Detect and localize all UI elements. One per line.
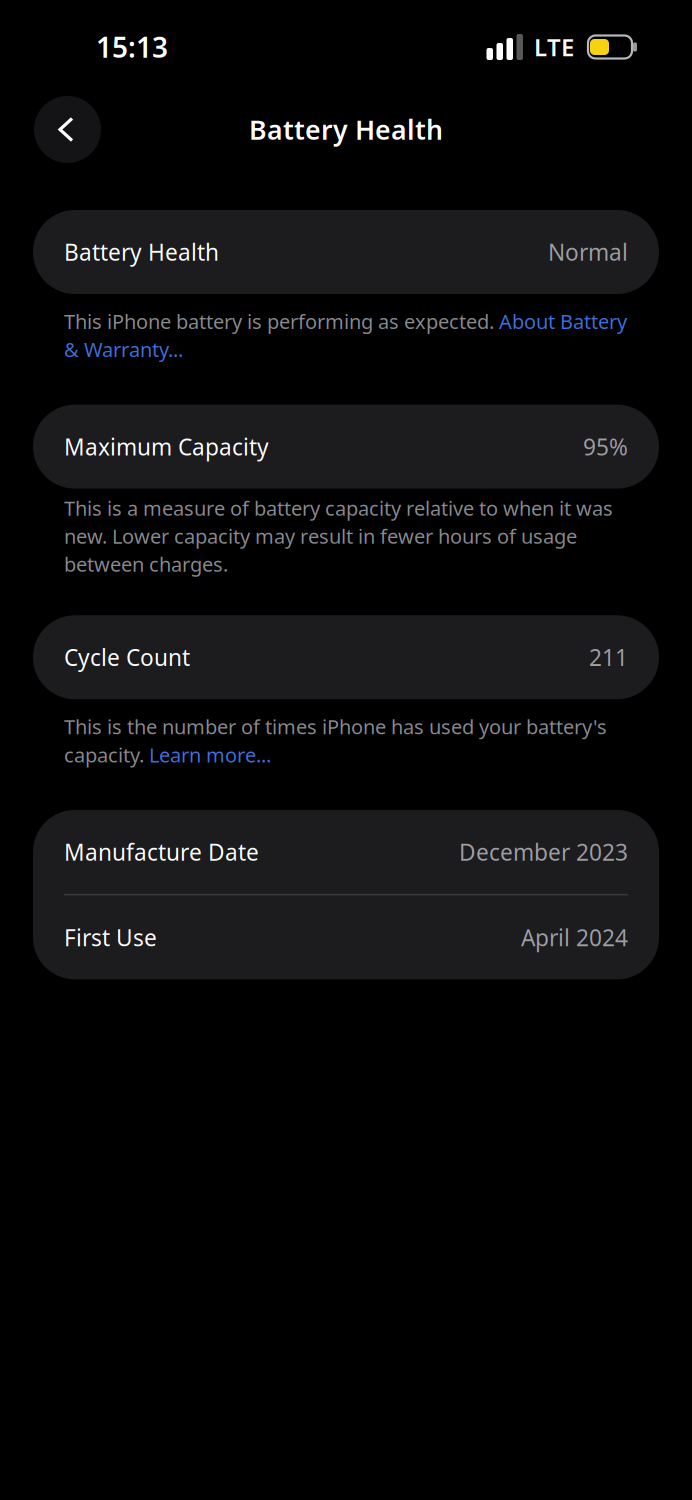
staticText: Battery Health — [64, 237, 219, 267]
staticText: This iPhone battery is performing as exp… — [64, 308, 627, 363]
staticText: December 2023 — [459, 837, 628, 867]
staticText: 15:13 — [96, 28, 168, 66]
staticText: This is a measure of battery capacity re… — [64, 495, 613, 577]
staticText: First Use — [64, 922, 157, 952]
button[interactable]: Maximum Capacity — [0, 405, 692, 489]
staticText: April 2024 — [521, 922, 628, 952]
button[interactable]: Cycle Count — [0, 615, 692, 699]
button[interactable]: Back — [34, 96, 101, 163]
staticText: 211 — [589, 642, 628, 672]
staticText: Manufacture Date — [64, 837, 259, 867]
staticText: Normal — [548, 237, 628, 267]
button[interactable]: Battery Health — [0, 210, 692, 294]
staticText: This is the number of times iPhone has u… — [64, 713, 607, 768]
staticText: Cycle Count — [64, 642, 190, 672]
staticText: Battery Health — [249, 112, 443, 147]
staticText: 95% — [583, 432, 628, 462]
staticText: LTE — [534, 31, 574, 63]
staticText: Maximum Capacity — [64, 432, 269, 462]
